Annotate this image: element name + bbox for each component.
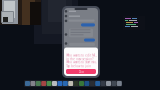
staticText: Go — [78, 69, 83, 74]
staticText: in the new session? — [66, 57, 93, 61]
staticText: Tap below to join — [66, 64, 91, 68]
staticText: Who wants to edit Mixer first — [66, 54, 97, 57]
staticText: Who wants to start mixing? — [66, 60, 97, 64]
button[interactable]: Go — [66, 69, 96, 74]
